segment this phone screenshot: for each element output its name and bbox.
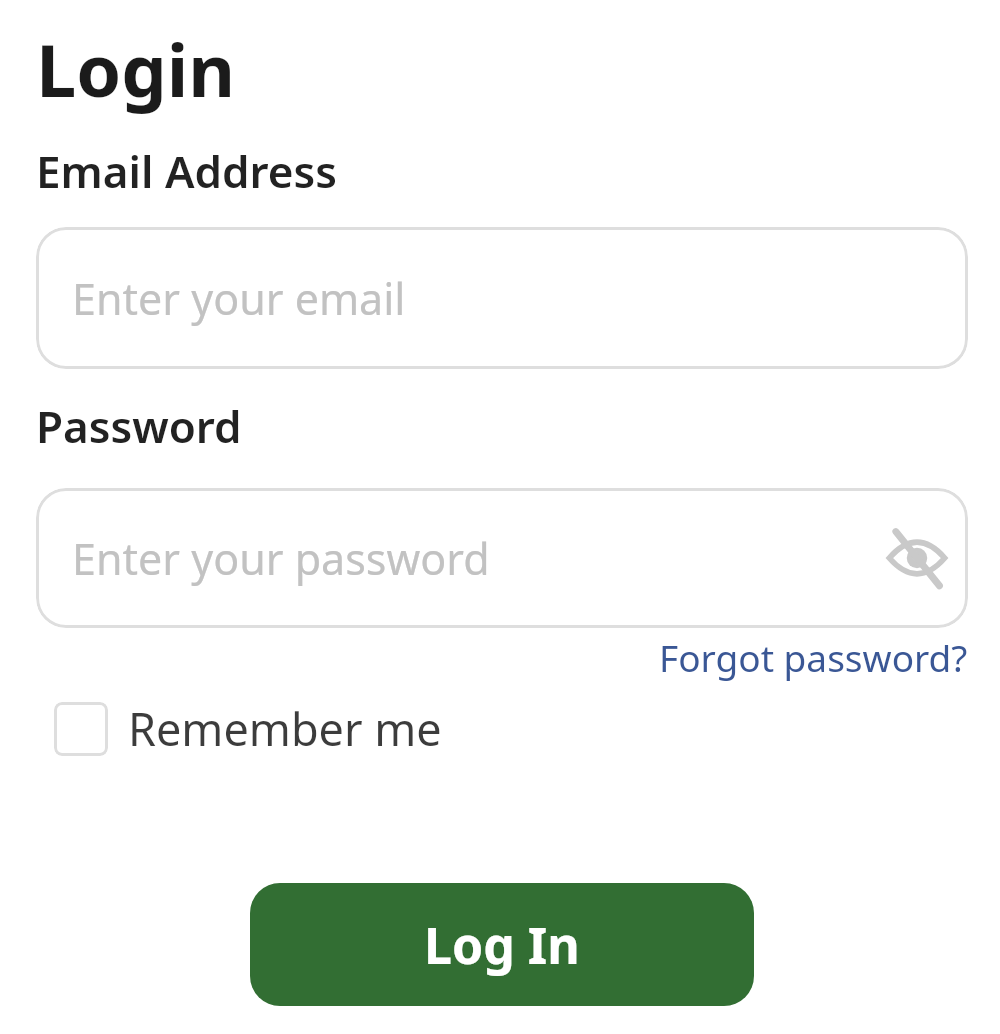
staticText: Login bbox=[36, 20, 236, 118]
staticText: Email Address bbox=[36, 141, 337, 201]
staticText: Remember me bbox=[128, 698, 442, 759]
staticText: Enter your password bbox=[72, 529, 490, 588]
button[interactable]: Forgot password? bbox=[659, 632, 968, 682]
staticText: Log In bbox=[424, 911, 580, 979]
button[interactable] bbox=[884, 525, 950, 591]
button[interactable]: Enter your email bbox=[36, 227, 968, 369]
staticText: Enter your email bbox=[72, 269, 406, 328]
button[interactable]: Log In bbox=[250, 883, 754, 1006]
button[interactable]: Enter your password bbox=[36, 488, 968, 628]
button[interactable]: Remember me bbox=[54, 698, 442, 759]
staticText: Password bbox=[36, 396, 242, 456]
